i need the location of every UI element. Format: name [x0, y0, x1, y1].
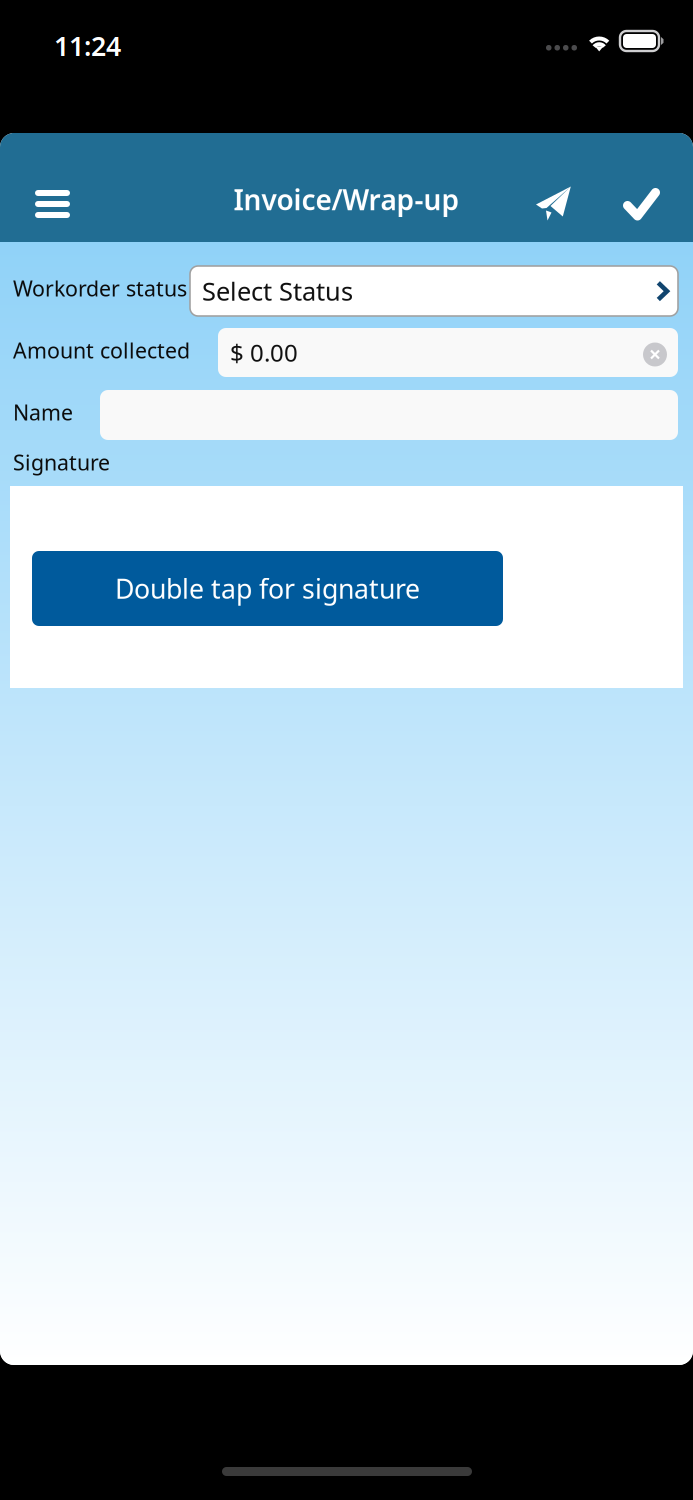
staticText: Name [13, 398, 73, 426]
staticText: Select Status [202, 274, 353, 308]
button[interactable]: Menu [12, 133, 94, 242]
button[interactable]: Send [516, 133, 594, 242]
staticText: $ 0.00 [230, 337, 298, 368]
button[interactable]: Double tap for signature [32, 551, 503, 626]
staticText: Invoice/Wrap-up [233, 181, 459, 218]
staticText: Double tap for signature [115, 571, 420, 606]
staticText: 11:24 [54, 28, 121, 63]
button[interactable]: Save [602, 133, 682, 242]
staticText: Workorder status [13, 274, 187, 302]
button[interactable]: Select Status [190, 266, 678, 316]
staticText: Amount collected [13, 336, 190, 364]
staticText: Signature [13, 448, 110, 476]
button[interactable]: Clear [643, 342, 667, 366]
